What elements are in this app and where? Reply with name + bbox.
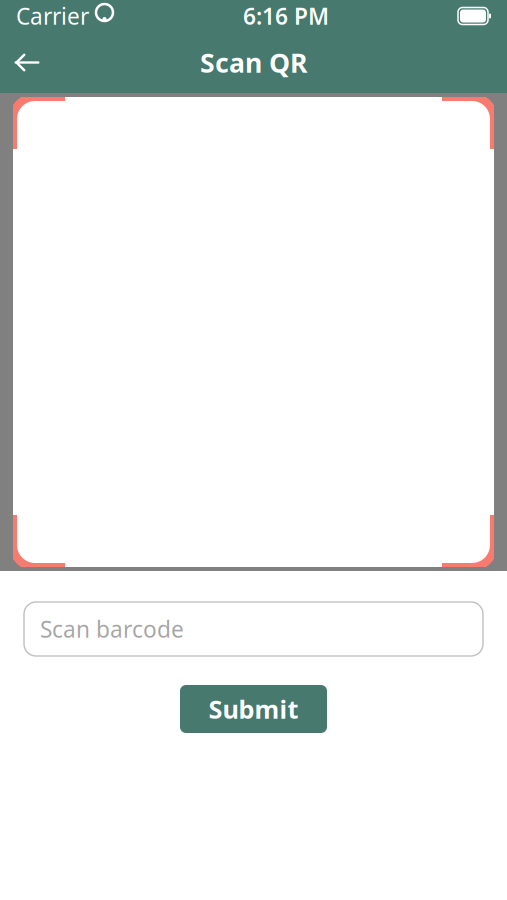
staticText: Scan QR [200,45,307,80]
staticText: Submit [208,692,298,726]
button[interactable]: Scan barcode [24,602,483,656]
staticText: Scan barcode [40,614,184,644]
staticText: Carrier [16,1,89,31]
staticText: 6:16 PM [243,1,329,31]
button[interactable]: Back [0,34,54,90]
button[interactable]: Submit [180,685,327,733]
